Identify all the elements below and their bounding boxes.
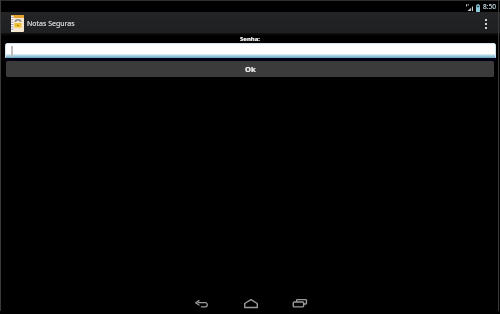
button[interactable]: Ok — [6, 61, 494, 77]
button[interactable]: More options — [478, 12, 500, 33]
staticText: Senha: — [240, 35, 260, 43]
button[interactable]: Home — [226, 290, 275, 314]
button[interactable]: Senha password field — [6, 44, 495, 59]
button[interactable]: Notas Seguras — [0, 12, 81, 33]
staticText: 8:50 — [483, 2, 496, 11]
staticText: Notas Seguras — [27, 19, 75, 29]
staticText: Ok — [245, 64, 256, 74]
button[interactable]: Recent apps — [275, 290, 324, 314]
button[interactable]: Back — [177, 290, 226, 314]
